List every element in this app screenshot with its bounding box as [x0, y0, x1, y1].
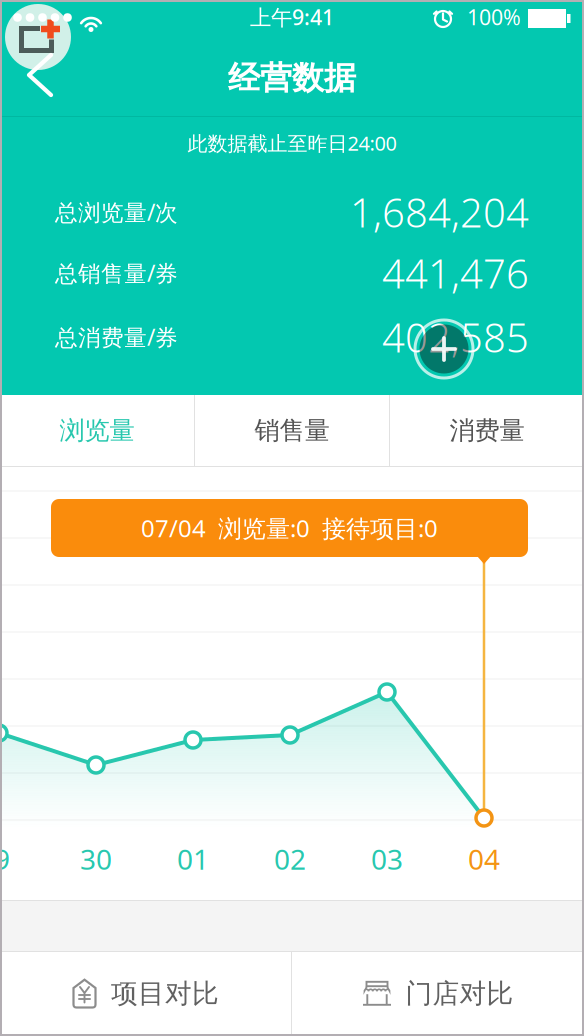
button[interactable]: 浏览量 — [0, 395, 194, 466]
staticText: 03 — [371, 840, 403, 878]
staticText: 01 — [177, 840, 209, 878]
button[interactable]: 消费量 — [390, 395, 584, 466]
staticText: 浏览量 — [59, 415, 134, 446]
button[interactable]: 返回 — [25, 53, 69, 97]
staticText: 消费量 — [449, 415, 524, 446]
staticText: 销售量 — [254, 415, 329, 446]
staticText: 402,585 — [382, 310, 529, 363]
button[interactable]: 门店对比 — [292, 952, 584, 1035]
staticText: 1,684,204 — [350, 185, 529, 238]
staticText: 门店对比 — [405, 977, 513, 1010]
staticText: 02 — [274, 840, 306, 878]
staticText: 07/04 浏览量:0 接待项目:0 — [141, 512, 438, 544]
staticText: 项目对比 — [111, 977, 219, 1010]
button[interactable]: 添加 — [414, 319, 474, 379]
staticText: 总销售量/券 — [55, 258, 178, 288]
button[interactable]: 销售量 — [195, 395, 389, 466]
staticText: 441,476 — [382, 246, 529, 299]
staticText: 29 — [0, 840, 10, 878]
staticText: 经营数据 — [228, 58, 356, 98]
staticText: 30 — [80, 840, 112, 878]
button[interactable]: 项目对比 — [0, 952, 291, 1035]
staticText: 04 — [468, 840, 500, 878]
staticText: 总浏览量/次 — [55, 197, 178, 227]
staticText: 上午9:41 — [250, 3, 334, 31]
staticText: 总消费量/券 — [55, 322, 178, 352]
staticText: 100% — [467, 3, 521, 31]
staticText: 此数据截止至昨日24:00 — [187, 130, 396, 156]
